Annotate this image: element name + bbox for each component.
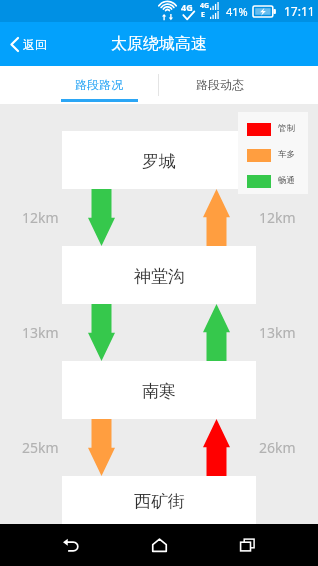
staticText: 南寒 xyxy=(142,381,176,402)
staticText: 17:11 xyxy=(284,3,315,19)
button[interactable]: Back xyxy=(42,524,98,566)
staticText: 4G xyxy=(181,1,193,13)
staticText: 车多 xyxy=(278,149,295,160)
staticText: 太原绕城高速 xyxy=(111,34,207,54)
staticText: 12km xyxy=(259,208,296,227)
staticText: 12km xyxy=(22,208,59,227)
button[interactable]: 路段动态 xyxy=(159,66,280,104)
staticText: 13km xyxy=(22,323,59,342)
staticText: 罗城 xyxy=(142,151,176,172)
staticText: 畅通 xyxy=(278,175,295,186)
staticText: 管制 xyxy=(278,123,295,134)
button[interactable]: Home xyxy=(131,524,187,566)
staticText: 神堂沟 xyxy=(134,266,185,287)
staticText: E xyxy=(201,10,205,20)
staticText: 41% xyxy=(226,4,248,19)
button[interactable]: 神堂沟 xyxy=(62,246,256,304)
staticText: 4G xyxy=(200,1,210,11)
button[interactable]: Recent apps xyxy=(219,524,275,566)
button[interactable]: 返回 xyxy=(0,27,57,62)
staticText: 路段动态 xyxy=(196,77,244,92)
button[interactable]: 西矿街 xyxy=(62,476,256,524)
button[interactable]: 罗城 xyxy=(62,131,256,189)
staticText: 25km xyxy=(22,438,59,457)
button[interactable]: 路段路况 xyxy=(38,66,159,104)
staticText: 西矿街 xyxy=(134,491,185,512)
staticText: 返回 xyxy=(23,37,47,52)
staticText: 13km xyxy=(259,323,296,342)
staticText: 26km xyxy=(259,438,296,457)
staticText: 路段路况 xyxy=(75,77,123,92)
button[interactable]: 南寒 xyxy=(62,361,256,419)
